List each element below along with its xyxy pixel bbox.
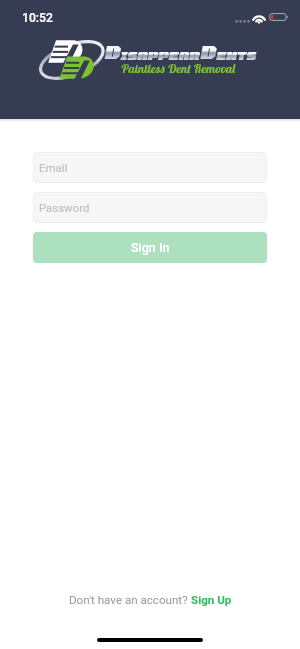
staticText: Don't have an account? [69, 593, 191, 607]
staticText: ISAPPEAR [120, 49, 200, 62]
button[interactable]: Sign Up [191, 593, 232, 607]
staticText: Sign Up [191, 593, 232, 607]
button[interactable]: Email [33, 152, 267, 183]
staticText: Email [39, 161, 68, 174]
staticText: Password [39, 201, 90, 214]
staticText: D [200, 43, 216, 62]
staticText: ENTS [216, 49, 256, 62]
staticText: Paintless Dent Removal [121, 61, 236, 76]
staticText: Sign In [131, 240, 170, 255]
staticText: 10:52 [22, 11, 53, 25]
staticText: D [104, 43, 120, 62]
button[interactable]: Sign In [33, 232, 267, 263]
button[interactable]: Password [33, 192, 267, 223]
